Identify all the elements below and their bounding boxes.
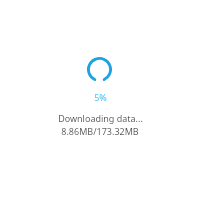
staticText: 8.86MB/173.32MB bbox=[61, 125, 139, 137]
staticText: Downloading data... bbox=[58, 112, 143, 124]
button[interactable]: Download progress bbox=[87, 57, 112, 82]
staticText: 5% bbox=[94, 91, 107, 103]
